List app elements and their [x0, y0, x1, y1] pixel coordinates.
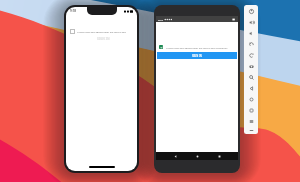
button[interactable]: SIGN IN — [157, 52, 237, 59]
button[interactable]: I have read and agreed with the terms an… — [70, 29, 136, 34]
staticText: I have read and agreed with the terms an… — [77, 30, 136, 33]
staticText: SIGN IN — [97, 37, 110, 41]
staticText: SIGN IN — [192, 54, 202, 58]
button[interactable]: Rotate left — [244, 39, 258, 50]
button[interactable]: Recents — [216, 153, 222, 159]
button[interactable]: Power — [244, 6, 258, 17]
button[interactable]: Rotate right — [244, 50, 258, 61]
button[interactable]: Home — [194, 153, 200, 159]
button[interactable]: I have read and agreed with the terms an… — [159, 45, 236, 49]
button[interactable]: Overview — [244, 105, 258, 116]
staticText: 9:18 — [158, 18, 163, 21]
button[interactable]: SIGN IN — [70, 36, 137, 42]
button[interactable]: Back — [244, 83, 258, 94]
button[interactable]: Zoom — [244, 72, 258, 83]
button[interactable]: Menu — [244, 116, 258, 127]
button[interactable]: Back — [172, 153, 178, 159]
button[interactable]: Take screenshot — [244, 61, 258, 72]
button[interactable]: Volume down — [244, 28, 258, 39]
staticText: I have read and agreed with the terms an… — [166, 46, 228, 49]
button[interactable]: More — [244, 127, 258, 133]
button[interactable]: Volume up — [244, 17, 258, 28]
staticText: 9:18 — [70, 9, 76, 13]
button[interactable]: Home — [244, 94, 258, 105]
